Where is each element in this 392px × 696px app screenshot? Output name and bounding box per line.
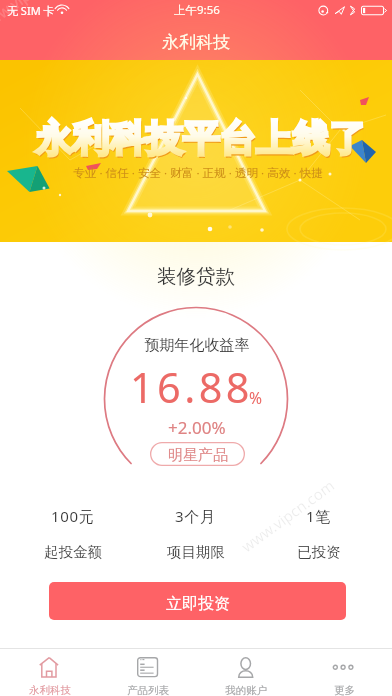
staticText: % xyxy=(249,387,263,408)
button[interactable]: 明星产品 xyxy=(150,442,245,466)
staticText: 100元 xyxy=(51,506,95,526)
staticText: 已投资 xyxy=(297,543,341,561)
staticText: 立即投资 xyxy=(166,594,230,614)
staticText: 我的账户 xyxy=(225,684,267,696)
staticText: 16.88 xyxy=(130,359,253,415)
staticText: 装修贷款 xyxy=(0,264,392,289)
staticText: 永利科技平台上线了 xyxy=(5,116,392,162)
staticText: 产品列表 xyxy=(127,684,169,696)
staticText: +2.00% xyxy=(168,416,226,439)
button[interactable]: 产品列表 xyxy=(98,649,196,696)
staticText: 上午9:56 xyxy=(174,2,220,18)
staticText: 项目期限 xyxy=(167,543,225,561)
staticText: 更多 xyxy=(334,684,355,696)
staticText: 起投金额 xyxy=(44,543,102,561)
staticText: 永利科技 xyxy=(162,32,230,53)
staticText: 1笔 xyxy=(306,506,331,526)
staticText: www.vipcn.com xyxy=(0,0,76,36)
staticText: 预期年化收益率 xyxy=(1,336,392,355)
staticText: 永利科技平台上线了 xyxy=(5,116,392,162)
staticText: 明星产品 xyxy=(168,446,228,465)
staticText: 永利科技 xyxy=(29,684,71,696)
button[interactable]: 永利科技 xyxy=(0,649,98,696)
staticText: 永利科技平台上线了 xyxy=(6,118,392,164)
button[interactable]: 我的账户 xyxy=(196,649,294,696)
staticText: 专业 · 信任 · 安全 · 财富 · 正规 · 透明 · 高效 · 快捷 xyxy=(2,165,392,181)
button[interactable]: 更多 xyxy=(294,649,392,696)
button[interactable]: 立即投资 xyxy=(49,582,346,620)
staticText: www.vipcn.com xyxy=(237,475,339,556)
staticText: 3个月 xyxy=(175,506,216,526)
staticText: 无 SIM 卡 xyxy=(7,3,55,18)
